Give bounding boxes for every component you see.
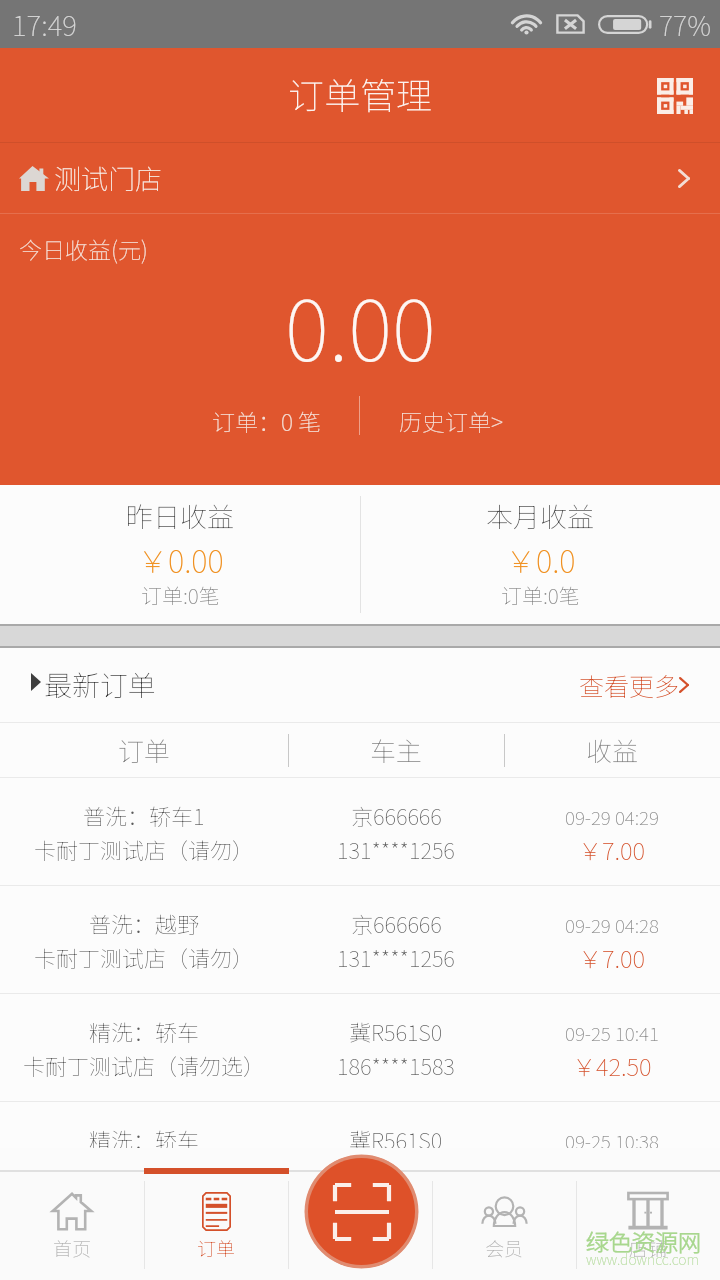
staticText: 186****1583 bbox=[337, 1049, 455, 1081]
staticText: 131****1256 bbox=[337, 941, 455, 973]
button[interactable]: 本月收益 bbox=[360, 485, 720, 624]
button[interactable]: Scan bbox=[304, 1154, 419, 1269]
staticText: 订单 bbox=[118, 731, 171, 769]
button[interactable]: 会员 bbox=[432, 1172, 576, 1280]
button[interactable]: 精洗：轿车 bbox=[0, 994, 720, 1102]
staticText: 09-25 10:38 bbox=[565, 1127, 659, 1155]
staticText: 77% bbox=[659, 5, 711, 44]
staticText: 订单:0笔 bbox=[501, 580, 580, 610]
staticText: 今日收益(元) bbox=[19, 232, 148, 265]
staticText: 17:49 bbox=[12, 4, 77, 45]
staticText: 车主 bbox=[370, 731, 423, 769]
button[interactable]: 查看更多 bbox=[570, 658, 700, 712]
staticText: 09-25 10:41 bbox=[565, 1019, 659, 1047]
staticText: ￥0.00 bbox=[137, 537, 224, 582]
button[interactable]: 普洗：轿车1 bbox=[0, 778, 720, 886]
staticText: 最新订单 bbox=[44, 664, 157, 705]
staticText: 订单管理 bbox=[288, 67, 433, 119]
staticText: 会员 bbox=[485, 1234, 524, 1262]
staticText: 店铺 bbox=[629, 1234, 668, 1262]
staticText: 收益 bbox=[586, 731, 639, 769]
staticText: 卡耐丁测试店（请勿选） bbox=[23, 1049, 266, 1081]
staticText: 订单：0 笔 bbox=[212, 404, 322, 437]
staticText: 订单 bbox=[197, 1234, 236, 1262]
button[interactable]: 精洗：轿车 bbox=[0, 1102, 720, 1210]
staticText: 昨日收益 bbox=[126, 496, 234, 535]
staticText: 订单:0笔 bbox=[141, 580, 220, 610]
staticText: 绿色资源网 bbox=[586, 1224, 701, 1257]
staticText: 131****1256 bbox=[337, 833, 455, 865]
staticText: 卡耐丁测试店（请勿） bbox=[34, 941, 255, 973]
staticText: ￥0.0 bbox=[505, 537, 576, 582]
staticText: 历史订单> bbox=[399, 404, 503, 437]
staticText: www.downcc.com bbox=[586, 1249, 699, 1269]
staticText: 冀R561S0 bbox=[349, 1123, 443, 1155]
staticText: 09-29 04:29 bbox=[565, 803, 659, 831]
staticText: 冀R561S0 bbox=[349, 1015, 443, 1047]
staticText: 09-29 04:28 bbox=[565, 911, 659, 939]
staticText: 本月收益 bbox=[486, 496, 594, 535]
staticText: 精洗：轿车 bbox=[89, 1015, 200, 1047]
staticText: 精洗：轿车 bbox=[89, 1123, 200, 1155]
staticText: 京666666 bbox=[351, 799, 442, 831]
button[interactable]: 订单 bbox=[144, 1172, 288, 1280]
staticText: ￥7.00 bbox=[578, 832, 646, 867]
button[interactable]: 历史订单> bbox=[390, 396, 520, 436]
button[interactable]: Scan QR code bbox=[639, 60, 711, 132]
button[interactable]: 昨日收益 bbox=[0, 485, 360, 624]
staticText: ￥42.50 bbox=[572, 1156, 652, 1191]
staticText: 0.00 bbox=[285, 264, 436, 386]
staticText: 普洗：越野 bbox=[89, 907, 200, 939]
staticText: 查看更多 bbox=[579, 667, 680, 703]
button[interactable]: 首页 bbox=[0, 1172, 144, 1280]
staticText: 普洗：轿车1 bbox=[83, 799, 205, 831]
staticText: 首页 bbox=[53, 1234, 92, 1262]
staticText: 186****1583 bbox=[337, 1157, 455, 1189]
button[interactable]: 店铺 bbox=[576, 1172, 720, 1280]
button[interactable]: 测试门店 bbox=[0, 143, 720, 213]
staticText: ￥42.50 bbox=[572, 1048, 652, 1083]
button[interactable]: 普洗：越野 bbox=[0, 886, 720, 994]
staticText: 京666666 bbox=[351, 907, 442, 939]
staticText: 卡耐丁测试店（请勿） bbox=[34, 833, 255, 865]
staticText: ￥7.00 bbox=[578, 940, 646, 975]
staticText: 测试门店 bbox=[54, 158, 162, 197]
staticText: 卡耐丁测试店（请勿选） bbox=[23, 1157, 266, 1189]
